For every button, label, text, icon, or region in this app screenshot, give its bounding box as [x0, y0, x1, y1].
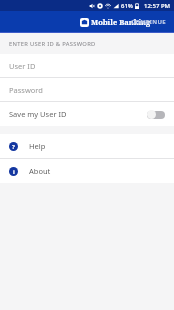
staticText: Help [29, 141, 46, 151]
staticText: 61% [121, 2, 133, 10]
staticText: About [29, 166, 51, 176]
button[interactable]: CONTINUE [124, 14, 174, 30]
staticText: User ID [9, 61, 36, 71]
button[interactable]: Save my User ID [0, 102, 174, 126]
staticText: Password [9, 85, 43, 95]
button[interactable]: Password [0, 78, 174, 101]
button[interactable]: About [0, 159, 174, 183]
other: Help [9, 142, 18, 151]
staticText: Mobile Banking [91, 17, 151, 27]
staticText: 12:57 PM [144, 2, 171, 10]
staticText: CONTINUE [131, 18, 167, 26]
staticText: i [13, 168, 15, 176]
button[interactable]: User ID [0, 54, 174, 77]
other: About [9, 167, 18, 176]
staticText: Save my User ID [9, 109, 67, 119]
button[interactable]: Help [0, 134, 174, 158]
staticText: ENTER USER ID & PASSWORD [9, 40, 96, 48]
staticText: ? [12, 143, 15, 151]
